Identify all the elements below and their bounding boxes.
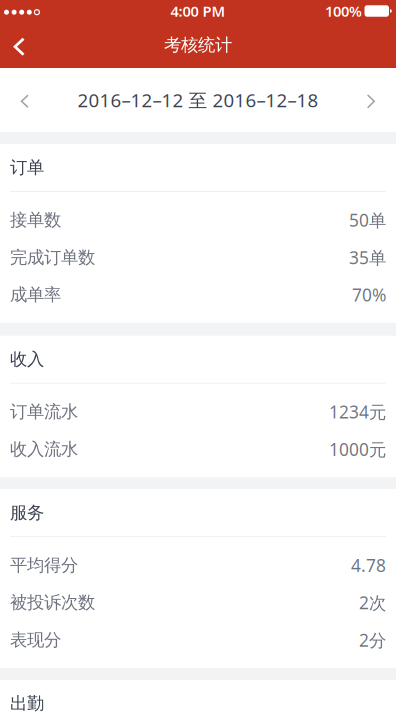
- button[interactable]: 表现分: [0, 621, 396, 659]
- staticText: 1234元: [329, 400, 386, 423]
- button[interactable]: 成单率: [0, 276, 396, 313]
- staticText: 4:00 PM: [170, 1, 225, 21]
- staticText: 完成订单数: [10, 247, 95, 268]
- button[interactable]: 平均得分: [0, 546, 396, 584]
- staticText: 考核统计: [164, 34, 232, 56]
- staticText: 收入流水: [10, 439, 78, 460]
- staticText: 1000元: [329, 438, 386, 461]
- staticText: 服务: [10, 502, 44, 523]
- button[interactable]: Next period: [348, 68, 396, 132]
- button[interactable]: Previous period: [0, 68, 48, 132]
- staticText: 100%: [325, 1, 362, 21]
- staticText: 成单率: [10, 284, 61, 305]
- button[interactable]: 接单数: [0, 201, 396, 239]
- staticText: 接单数: [10, 209, 61, 231]
- staticText: 表现分: [10, 629, 61, 651]
- button[interactable]: Back: [0, 22, 46, 68]
- staticText: 2016–12–12 至 2016–12–18: [77, 88, 318, 112]
- staticText: 4.78: [351, 554, 386, 577]
- button[interactable]: 完成订单数: [0, 239, 396, 276]
- staticText: 2分: [359, 628, 386, 651]
- staticText: 收入: [10, 349, 44, 370]
- staticText: 订单流水: [10, 401, 78, 422]
- staticText: 订单: [10, 157, 44, 178]
- button[interactable]: 被投诉次数: [0, 584, 396, 621]
- staticText: 平均得分: [10, 555, 78, 576]
- staticText: 2次: [359, 591, 386, 614]
- button[interactable]: 订单流水: [0, 393, 396, 430]
- staticText: 50单: [349, 208, 386, 231]
- staticText: 被投诉次数: [10, 592, 95, 613]
- staticText: 35单: [349, 246, 386, 269]
- staticText: 出勤: [10, 693, 44, 712]
- button[interactable]: 收入流水: [0, 430, 396, 468]
- staticText: 70%: [352, 283, 386, 306]
